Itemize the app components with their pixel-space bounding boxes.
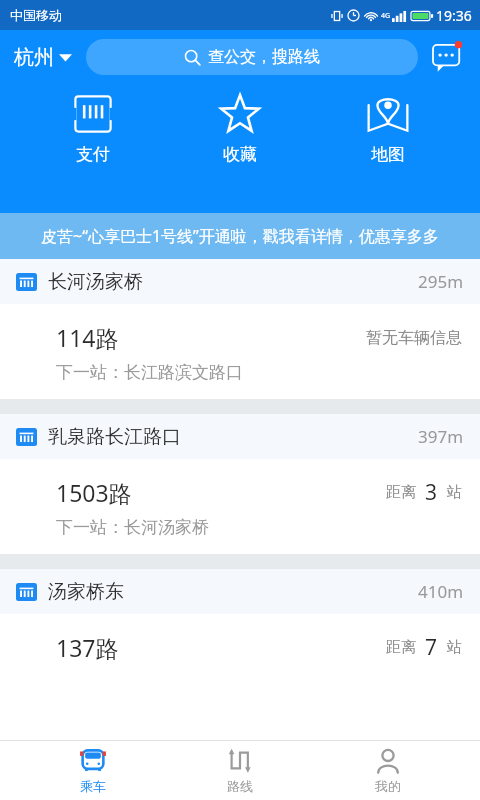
staticText: 295m xyxy=(418,270,464,293)
button[interactable]: 长河汤家桥 xyxy=(0,259,480,399)
staticText: 1503路 xyxy=(56,477,386,508)
button[interactable]: 杭州 xyxy=(10,41,76,74)
staticText: 114路 xyxy=(56,322,366,353)
staticText: 站 xyxy=(447,638,462,657)
staticText: 地图 xyxy=(371,144,405,165)
button[interactable]: Messages xyxy=(428,36,470,78)
staticText: 乳泉路长江路口 xyxy=(48,425,418,449)
staticText: 杭州 xyxy=(14,45,54,70)
staticText: 暂无车辆信息 xyxy=(366,328,462,348)
staticText: 4G xyxy=(381,11,391,21)
button[interactable]: 地图 xyxy=(333,84,443,165)
button[interactable]: 收藏 xyxy=(185,84,295,165)
staticText: 我的 xyxy=(375,778,401,794)
button[interactable]: 汤家桥东 xyxy=(0,569,480,679)
staticText: 长河汤家桥 xyxy=(48,270,418,294)
staticText: 距离 xyxy=(386,638,416,657)
staticText: 收藏 xyxy=(223,144,257,165)
staticText: 3 xyxy=(425,478,438,507)
staticText: 397m xyxy=(418,425,464,448)
button[interactable]: 乘车 xyxy=(38,741,148,800)
staticText: 下一站：长江路滨文路口 xyxy=(56,362,243,383)
staticText: 支付 xyxy=(76,144,110,165)
button[interactable]: 路线 xyxy=(185,741,295,800)
button[interactable]: 我的 xyxy=(333,741,443,800)
button[interactable]: 查公交，搜路线 xyxy=(86,39,418,75)
button[interactable]: 乳泉路长江路口 xyxy=(0,414,480,554)
staticText: 路线 xyxy=(227,778,253,794)
staticText: 7 xyxy=(425,633,438,662)
staticText: 查公交，搜路线 xyxy=(208,47,320,67)
staticText: 汤家桥东 xyxy=(48,580,418,604)
staticText: 距离 xyxy=(386,483,416,502)
staticText: 下一站：长河汤家桥 xyxy=(56,517,209,538)
staticText: 19:36 xyxy=(436,6,472,25)
button[interactable]: 皮苦~“心享巴士1号线”开通啦，戳我看详情，优惠享多多 xyxy=(0,213,480,259)
staticText: 中国移动 xyxy=(10,7,62,23)
staticText: 137路 xyxy=(56,632,386,663)
button[interactable]: 支付 xyxy=(38,84,148,165)
staticText: 乘车 xyxy=(80,778,106,794)
staticText: 站 xyxy=(447,483,462,502)
staticText: 410m xyxy=(418,580,464,603)
staticText: 皮苦~“心享巴士1号线”开通啦，戳我看详情，优惠享多多 xyxy=(41,225,439,247)
